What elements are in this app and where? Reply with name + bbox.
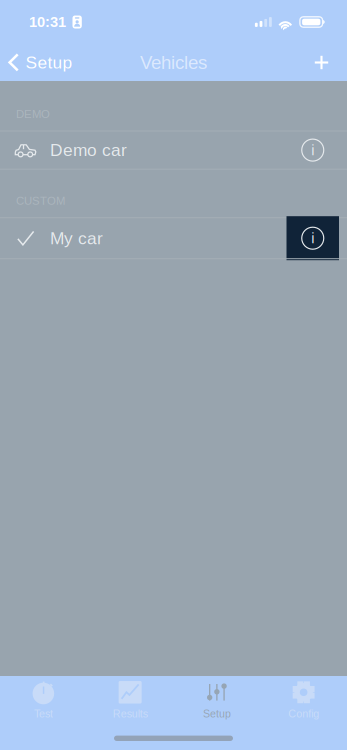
staticText: Demo car — [50, 140, 127, 160]
staticText: Vehicles — [140, 52, 207, 73]
button[interactable]: Config — [260, 676, 347, 724]
button[interactable]: Test — [0, 676, 87, 724]
button[interactable]: Demo car — [0, 131, 347, 169]
staticText: Config — [288, 708, 319, 720]
staticText: CUSTOM — [16, 194, 65, 207]
staticText: Setup — [203, 708, 231, 720]
button[interactable]: Add vehicle — [298, 44, 347, 81]
staticText: i — [311, 142, 314, 158]
staticText: 10:31 — [29, 14, 66, 30]
staticText: Test — [34, 708, 53, 720]
staticText: Setup — [25, 53, 72, 72]
button[interactable]: Demo car details — [286, 131, 339, 169]
staticText: Results — [113, 708, 148, 720]
staticText: DEMO — [16, 108, 50, 120]
button[interactable]: Setup — [173, 676, 260, 724]
staticText: My car — [50, 228, 103, 248]
button[interactable]: Results — [87, 676, 174, 724]
button[interactable]: My car details — [286, 216, 339, 260]
staticText: i — [311, 230, 314, 246]
button[interactable]: My car — [0, 218, 347, 258]
button[interactable]: Setup — [0, 44, 82, 81]
